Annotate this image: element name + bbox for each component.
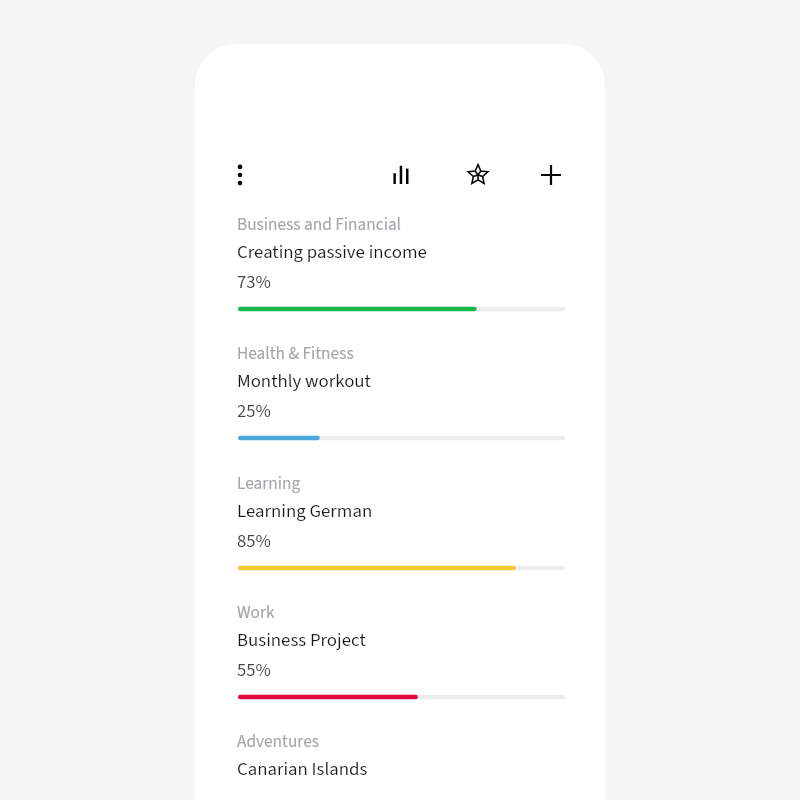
staticText: Creating passive income: [237, 239, 427, 266]
staticText: Business Project: [237, 627, 366, 654]
staticText: Monthly workout: [237, 368, 371, 395]
button[interactable]: Favorites: [456, 153, 500, 197]
staticText: 55%: [237, 657, 271, 683]
button[interactable]: Statistics: [379, 153, 423, 197]
button[interactable]: Health & Fitness: [195, 333, 605, 463]
staticText: Learning German: [237, 498, 373, 525]
button[interactable]: Work: [195, 592, 605, 722]
button[interactable]: Adventures: [195, 721, 605, 800]
staticText: 73%: [237, 269, 271, 295]
staticText: Adventures: [237, 729, 319, 754]
staticText: 85%: [237, 528, 271, 554]
button[interactable]: Business and Financial: [195, 204, 605, 334]
button[interactable]: Learning: [195, 463, 605, 593]
staticText: 25%: [237, 398, 271, 424]
button[interactable]: Add: [529, 153, 573, 197]
staticText: Business and Financial: [237, 212, 402, 237]
staticText: Health & Fitness: [237, 341, 354, 366]
button[interactable]: More options: [218, 153, 262, 197]
staticText: Work: [237, 600, 275, 625]
staticText: Canarian Islands: [237, 756, 368, 783]
staticText: Learning: [237, 471, 301, 496]
